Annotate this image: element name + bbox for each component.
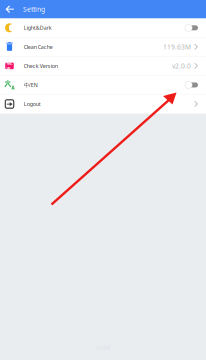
button[interactable]: Clean Cache [0,38,206,57]
staticText: v2.0.0 [172,61,191,70]
staticText: v2.0.0 [96,344,110,351]
staticText: Logout [24,100,41,108]
button[interactable]: Logout [0,95,206,114]
button[interactable]: NEW [0,57,206,76]
staticText: Setting [23,5,45,14]
staticText: 119.63M [163,42,191,51]
button[interactable]: 中/EN [0,76,206,95]
staticText: NEW [6,61,12,71]
button[interactable]: Back [0,0,23,18]
staticText: 中/EN [24,81,38,88]
staticText: Clean Cache [24,43,53,50]
staticText: Check Version [24,62,58,69]
button[interactable]: Light&Dark [0,18,206,38]
staticText: Light&Dark [24,24,52,31]
